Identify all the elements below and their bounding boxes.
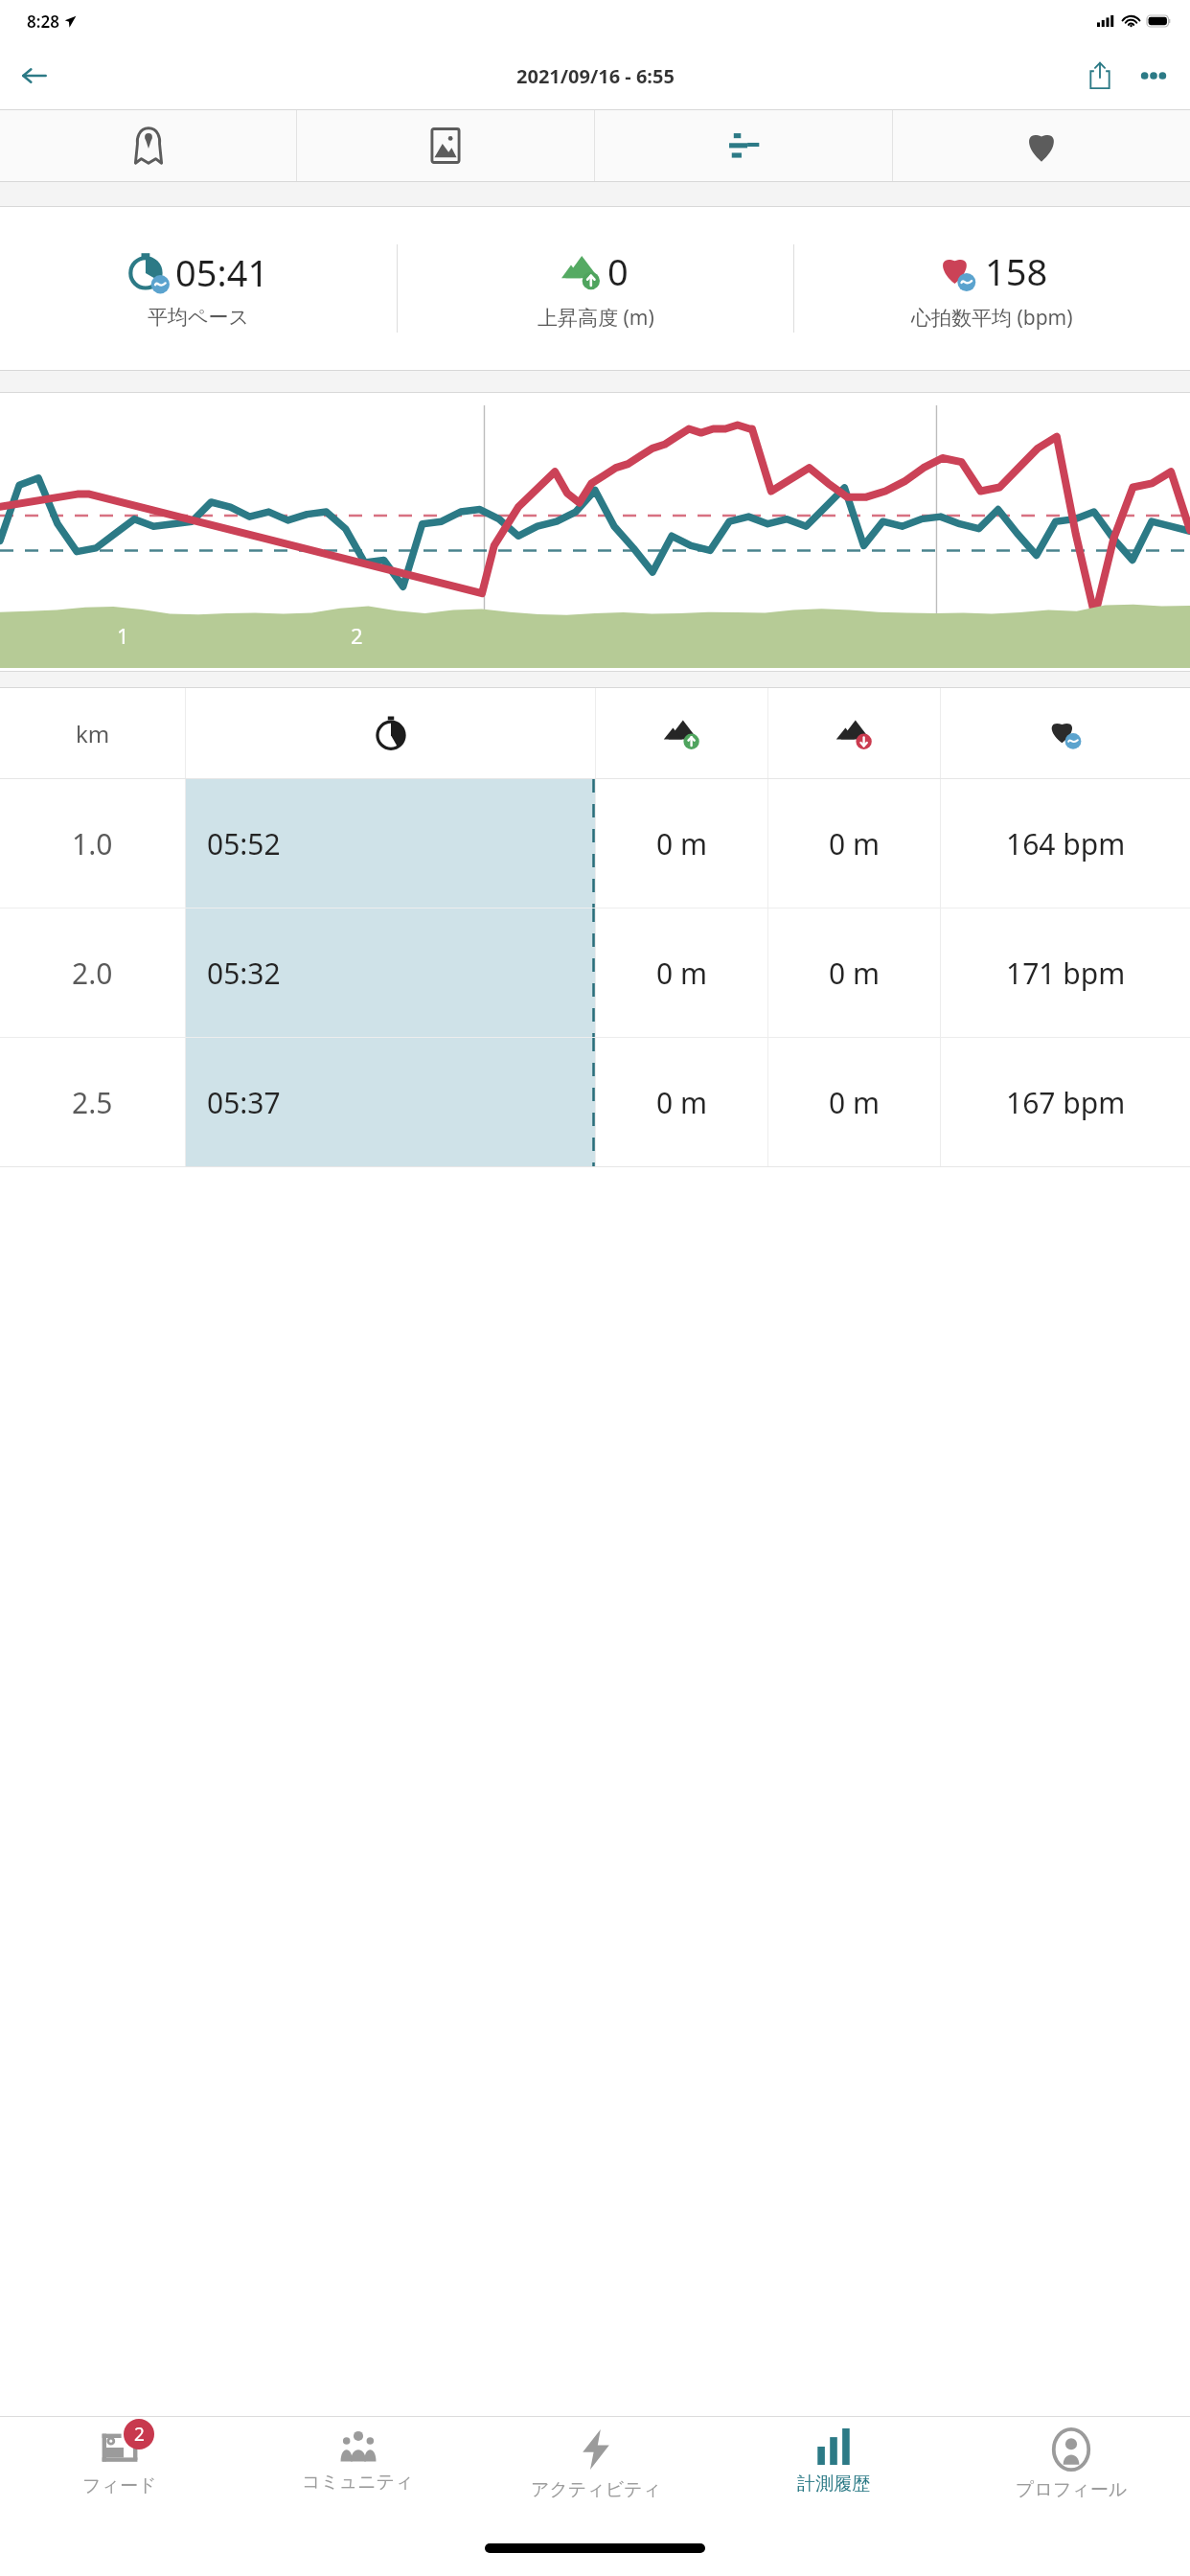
- staticText: 2: [351, 621, 363, 650]
- button[interactable]: Graph: [595, 110, 892, 181]
- staticText: 164 bpm: [1006, 824, 1126, 863]
- staticText: 2.0: [72, 954, 113, 993]
- staticText: 05:37: [207, 1083, 281, 1122]
- button[interactable]: プロフィール: [952, 2417, 1190, 2530]
- staticText: 0 m: [829, 1083, 881, 1122]
- staticText: 05:52: [207, 824, 281, 863]
- staticText: 計測履歴: [797, 2472, 870, 2495]
- staticText: 0: [607, 246, 629, 296]
- button[interactable]: 2.0: [0, 908, 1190, 1037]
- button[interactable]: 2.5: [0, 1038, 1190, 1166]
- staticText: 0 m: [656, 954, 708, 993]
- staticText: 167 bpm: [1006, 1083, 1126, 1122]
- button[interactable]: 計測履歴: [715, 2417, 952, 2530]
- button[interactable]: 05:41: [0, 207, 397, 370]
- staticText: コミュニティ: [302, 2471, 414, 2494]
- staticText: プロフィール: [1016, 2478, 1128, 2501]
- staticText: 158: [985, 246, 1048, 296]
- staticText: 05:32: [207, 954, 281, 993]
- staticText: 2: [134, 2422, 145, 2447]
- staticText: 平均ペース: [148, 305, 249, 330]
- button[interactable]: Map: [0, 110, 296, 181]
- staticText: 2021/09/16 - 6:55: [516, 63, 675, 89]
- staticText: 0 m: [656, 1083, 708, 1122]
- staticText: 0 m: [829, 954, 881, 993]
- button[interactable]: 1.0: [0, 779, 1190, 908]
- button[interactable]: アクティビティ: [477, 2417, 715, 2530]
- staticText: 8:28: [27, 11, 59, 33]
- button[interactable]: Heart rate: [893, 110, 1190, 181]
- button[interactable]: More options: [1127, 49, 1180, 103]
- staticText: km: [76, 718, 110, 749]
- button[interactable]: Back: [8, 49, 61, 103]
- staticText: 0 m: [656, 824, 708, 863]
- staticText: 心拍数平均 (bpm): [911, 304, 1073, 332]
- staticText: 1: [117, 621, 129, 650]
- staticText: 2.5: [72, 1083, 113, 1122]
- button[interactable]: 0: [398, 207, 793, 370]
- button[interactable]: Share: [1073, 49, 1127, 103]
- staticText: アクティビティ: [531, 2478, 662, 2501]
- staticText: 上昇高度 (m): [538, 304, 654, 332]
- staticText: フィード: [82, 2474, 157, 2497]
- staticText: 1.0: [72, 824, 113, 863]
- staticText: 0 m: [829, 824, 881, 863]
- staticText: 05:41: [175, 247, 269, 297]
- button[interactable]: 2: [0, 2417, 239, 2530]
- button[interactable]: 158: [794, 207, 1190, 370]
- button[interactable]: Photos: [297, 110, 594, 181]
- staticText: 171 bpm: [1006, 954, 1126, 993]
- button[interactable]: コミュニティ: [239, 2417, 477, 2530]
